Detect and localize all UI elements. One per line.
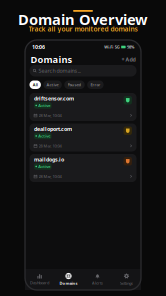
staticText: Track all your monitored domains — [28, 24, 137, 33]
staticText: 28 Mar, 10:04 — [38, 174, 61, 179]
staticText: Error — [90, 82, 100, 87]
button[interactable]: maildogs.io — [29, 154, 136, 182]
staticText: + Add — [121, 56, 135, 63]
staticText: Alerts — [92, 280, 103, 286]
button[interactable]: + Add — [121, 56, 135, 63]
button[interactable]: driftsensor.com — [29, 93, 136, 121]
staticText: Active — [38, 133, 50, 139]
staticText: Settings — [120, 280, 133, 286]
button[interactable]: All — [29, 80, 41, 89]
button[interactable]: Settings — [112, 273, 141, 286]
staticText: Domain Overview — [18, 10, 148, 29]
button[interactable]: dealloport.com — [29, 123, 136, 151]
button[interactable]: Active — [43, 80, 62, 89]
staticText: Dashboard — [30, 280, 49, 285]
staticText: 5G — [115, 44, 120, 50]
staticText: Domains — [59, 280, 77, 286]
staticText: Paused — [67, 82, 81, 87]
button[interactable]: Alerts — [83, 273, 112, 286]
staticText: Search domains... — [39, 67, 81, 74]
staticText: Wi-Fi — [104, 44, 113, 50]
staticText: 98% — [127, 44, 134, 50]
staticText: Domains — [30, 53, 72, 66]
staticText: maildogs.io — [34, 156, 64, 163]
staticText: 28 Mar, 10:04 — [38, 143, 61, 148]
staticText: 10:06 — [32, 43, 45, 51]
staticText: dealloport.com — [34, 125, 72, 133]
staticText: Active — [47, 82, 59, 87]
button[interactable]: Paused — [64, 80, 85, 89]
button[interactable]: Dashboard — [25, 273, 54, 285]
staticText: All — [33, 82, 38, 87]
staticText: 28 Mar, 10:04 — [38, 113, 61, 118]
staticText: driftsensor.com — [34, 95, 74, 102]
button[interactable]: Error — [87, 80, 104, 89]
button[interactable]: Domains — [54, 273, 83, 286]
staticText: Active — [38, 103, 50, 108]
staticText: Active — [38, 164, 50, 169]
